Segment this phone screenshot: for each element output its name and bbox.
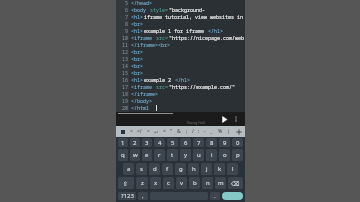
staticText: o	[223, 151, 227, 159]
staticText: 7	[125, 14, 129, 21]
staticText: 2	[133, 139, 137, 147]
button[interactable]: s	[136, 163, 147, 175]
button[interactable]: |	[227, 128, 230, 135]
button[interactable]: Enter	[222, 192, 243, 200]
button[interactable]: </	[137, 128, 142, 135]
button[interactable]: 2	[130, 138, 140, 147]
button[interactable]: h	[188, 163, 199, 175]
staticText: w	[133, 151, 138, 159]
button[interactable]: Move cursor	[234, 127, 243, 136]
staticText: 14	[122, 63, 129, 70]
button[interactable]: -	[204, 128, 206, 135]
button[interactable]: w	[130, 149, 140, 161]
staticText: e	[145, 151, 149, 159]
button[interactable]: m	[215, 177, 226, 189]
staticText: <br>	[131, 56, 144, 63]
button[interactable]: 3	[142, 138, 152, 147]
staticText: <br>	[131, 63, 144, 70]
button[interactable]: u	[193, 149, 204, 161]
staticText: v	[180, 179, 184, 187]
button[interactable]: p	[232, 149, 243, 161]
staticText: </iframe>	[131, 91, 159, 98]
button[interactable]: Run	[218, 113, 231, 126]
button[interactable]: q	[118, 149, 128, 161]
staticText: <iframe	[131, 84, 156, 91]
staticText: <h1>	[131, 14, 144, 21]
button[interactable]: ;	[186, 128, 188, 135]
staticText: <br>	[131, 70, 144, 77]
button[interactable]: d	[149, 163, 160, 175]
staticText: :	[198, 128, 200, 135]
button[interactable]: n	[202, 177, 213, 189]
button[interactable]: i	[206, 149, 217, 161]
staticText: g	[179, 165, 183, 173]
button[interactable]: .	[210, 192, 220, 200]
button[interactable]: %	[218, 128, 223, 135]
button[interactable]: v	[176, 177, 187, 189]
button[interactable]: 9	[219, 138, 230, 147]
button[interactable]: f	[162, 163, 173, 175]
button[interactable]: l	[227, 163, 238, 175]
staticText: "https://nicepage.com/web	[169, 35, 245, 42]
button[interactable]: >	[147, 128, 150, 135]
button[interactable]: /	[192, 128, 194, 135]
button[interactable]: o	[219, 149, 230, 161]
button[interactable]: c	[163, 177, 174, 189]
button[interactable]: 4	[154, 138, 165, 147]
button[interactable]: ,	[138, 192, 148, 200]
staticText: 15	[122, 70, 129, 77]
staticText: </h1>	[208, 28, 224, 35]
staticText: d	[153, 165, 157, 173]
button[interactable]: 0	[232, 138, 243, 147]
button[interactable]: :	[198, 128, 200, 135]
button[interactable]: 7	[193, 138, 204, 147]
button[interactable]: g	[175, 163, 186, 175]
button[interactable]: _	[210, 128, 213, 135]
staticText: 4	[158, 139, 162, 147]
button[interactable]: z	[136, 177, 148, 189]
staticText: ;	[186, 128, 188, 135]
button[interactable]: t	[167, 149, 178, 161]
button[interactable]: k	[214, 163, 225, 175]
button[interactable]: 8	[206, 138, 217, 147]
staticText: src=	[156, 84, 169, 91]
staticText: Rowing Hold	[187, 121, 205, 125]
button[interactable]: e	[142, 149, 152, 161]
button[interactable]: ?123	[118, 192, 136, 200]
button[interactable]: x	[150, 177, 161, 189]
button[interactable]: 5	[167, 138, 178, 147]
button[interactable]: More options	[231, 114, 241, 124]
staticText: iframe tutorial, view websites in fram	[144, 14, 245, 21]
staticText: /	[192, 128, 194, 135]
staticText: u	[197, 151, 201, 159]
button[interactable]: ⌫	[228, 177, 243, 189]
staticText: 6	[184, 139, 188, 147]
button[interactable]: ⇧	[118, 177, 134, 189]
staticText: "background-color:rgba(0,0	[169, 7, 245, 14]
staticText: p	[236, 151, 240, 159]
button[interactable]: r	[154, 149, 165, 161]
staticText: &	[177, 128, 181, 135]
staticText: 11	[122, 42, 129, 49]
button[interactable]: 6	[180, 138, 191, 147]
staticText: b	[193, 179, 197, 187]
button[interactable]: Clipboard	[119, 128, 126, 135]
staticText: 3	[145, 139, 149, 147]
staticText: style=	[150, 7, 169, 14]
button[interactable]: <	[130, 128, 133, 135]
button[interactable]: "	[170, 128, 173, 135]
button[interactable]: =	[163, 128, 166, 135]
button[interactable]: j	[201, 163, 212, 175]
staticText: ?123	[121, 192, 134, 200]
staticText: 18	[122, 91, 129, 98]
staticText: >	[147, 128, 150, 135]
button[interactable]: 1	[118, 138, 128, 147]
button[interactable]: b	[189, 177, 200, 189]
staticText: <body	[131, 7, 150, 14]
button[interactable]: &	[177, 128, 181, 135]
staticText: <h1>	[131, 28, 144, 35]
button[interactable]: y	[180, 149, 191, 161]
button[interactable]: ↵	[154, 129, 159, 135]
button[interactable]: a	[123, 163, 134, 175]
